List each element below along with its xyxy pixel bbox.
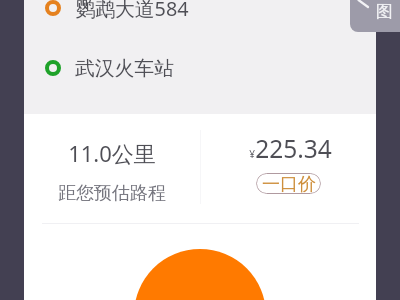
button[interactable]: 鹦鹉大道584: [24, 0, 376, 31]
button[interactable]: 地图: [350, 0, 400, 32]
staticText: 一口价: [262, 173, 316, 194]
button[interactable]: 立即叫车: [134, 249, 266, 300]
staticText: 图: [376, 1, 393, 22]
button[interactable]: 武汉火车站: [24, 46, 376, 91]
button[interactable]: 11.0公里: [24, 114, 202, 222]
staticText: 武汉火车站: [75, 56, 174, 81]
staticText: 225.34: [255, 132, 332, 165]
staticText: 鹦鹉大道584: [75, 0, 189, 22]
button[interactable]: 一口价: [256, 173, 321, 194]
staticText: ¥: [249, 147, 255, 161]
staticText: 11.0公里: [23, 138, 201, 168]
staticText: 距您预估路程: [23, 182, 201, 205]
button[interactable]: ¥: [202, 114, 376, 222]
